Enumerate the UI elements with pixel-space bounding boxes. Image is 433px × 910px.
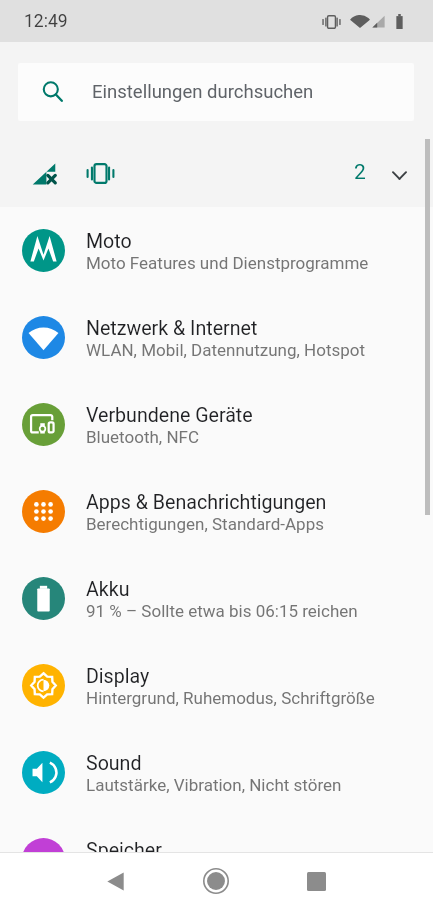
staticText: Apps & Benachrichtigungen <box>86 491 327 514</box>
staticText: Display <box>86 665 150 688</box>
button[interactable]: Display <box>0 642 433 729</box>
staticText: Berechtigungen, Standard-Apps <box>86 514 324 534</box>
staticText: 2 <box>354 160 366 185</box>
staticText: Netzwerk & Internet <box>86 317 258 340</box>
staticText: Sound <box>86 752 142 775</box>
button[interactable]: Apps & Benachrichtigungen <box>0 468 433 555</box>
staticText: Hintergrund, Ruhemodus, Schriftgröße <box>86 688 375 708</box>
staticText: Moto <box>86 230 132 253</box>
staticText: Einstellungen durchsuchen <box>92 81 314 103</box>
staticText: WLAN, Mobil, Datennutzung, Hotspot <box>86 340 366 360</box>
staticText: Bluetooth, NFC <box>86 427 199 447</box>
staticText: 12:49 <box>24 11 68 32</box>
button[interactable]: Sound <box>0 729 433 816</box>
staticText: Moto Features und Dienstprogramme <box>86 253 369 273</box>
staticText: Verbundene Geräte <box>86 404 253 427</box>
button[interactable]: Home <box>184 852 248 910</box>
button[interactable]: Akku <box>0 555 433 642</box>
staticText: Speicher <box>86 839 162 862</box>
button[interactable]: 2 <box>0 141 433 207</box>
staticText: 91 % – Sollte etwa bis 06:15 reichen <box>86 601 358 621</box>
button[interactable]: Speicher <box>0 816 433 903</box>
button[interactable]: Netzwerk & Internet <box>0 294 433 381</box>
button[interactable]: Moto <box>0 207 433 294</box>
button[interactable]: Recents <box>284 852 348 910</box>
staticText: Akku <box>86 578 130 601</box>
staticText: Lautstärke, Vibration, Nicht stören <box>86 775 342 795</box>
button[interactable]: Einstellungen durchsuchen <box>18 63 414 121</box>
button[interactable]: Verbundene Geräte <box>0 381 433 468</box>
button[interactable]: Back <box>83 852 147 910</box>
staticText: Speicherplatz <box>86 862 189 882</box>
